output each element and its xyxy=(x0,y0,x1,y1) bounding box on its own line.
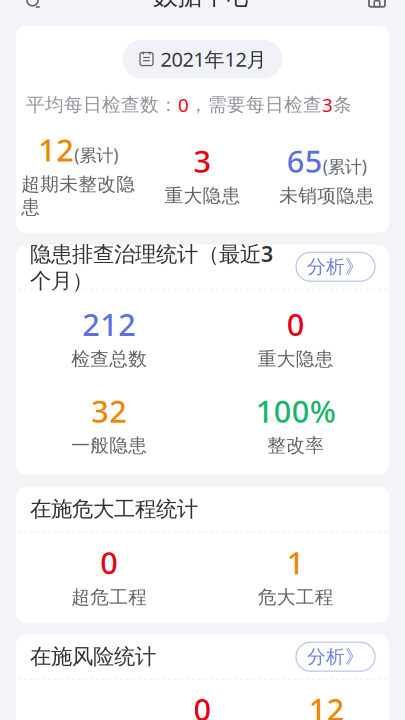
staticText: 条 xyxy=(333,93,352,116)
staticText: 在施风险统计 xyxy=(30,644,156,670)
staticText: 100% xyxy=(256,390,336,431)
staticText: 超期未整改隐患 xyxy=(21,173,135,219)
staticText: 1 xyxy=(287,542,305,583)
staticText: 重大隐患 xyxy=(164,184,240,207)
button[interactable]: Home xyxy=(355,0,399,18)
staticText: 32 xyxy=(91,390,127,431)
staticText: 在施危大工程统计 xyxy=(30,496,198,522)
staticText: 0 xyxy=(178,92,189,117)
staticText: 分析》 xyxy=(307,255,364,278)
staticText: 分析》 xyxy=(307,645,364,668)
staticText: (累计) xyxy=(323,155,367,178)
staticText: 重大隐患 xyxy=(258,347,334,370)
staticText: 65 xyxy=(287,141,323,181)
staticText: 0 xyxy=(100,542,118,583)
staticText: 隐患排查治理统计（最近3个月） xyxy=(30,239,273,294)
staticText: ，需要每日检查 xyxy=(189,93,322,116)
staticText: 超危工程 xyxy=(71,586,147,609)
staticText: 危大工程 xyxy=(258,586,334,609)
staticText: 整改率 xyxy=(267,434,324,457)
staticText: 未销项隐患 xyxy=(279,184,374,207)
staticText: 12 xyxy=(309,689,345,720)
staticText: 2021年12月 xyxy=(160,46,266,72)
staticText: 检查总数 xyxy=(71,347,147,370)
staticText: 一般隐患 xyxy=(71,434,147,457)
staticText: 平均每日检查数： xyxy=(26,93,178,116)
button[interactable]: 2021年12月 xyxy=(122,40,282,78)
staticText: 3 xyxy=(322,92,333,117)
staticText: 12 xyxy=(38,129,74,170)
staticText: 0 xyxy=(287,304,305,344)
staticText: (累计) xyxy=(74,143,118,166)
staticText: 0 xyxy=(193,689,211,720)
staticText: 3 xyxy=(193,141,211,181)
staticText: 数据中心 xyxy=(152,0,252,11)
staticText: 212 xyxy=(82,304,136,344)
button[interactable]: 分析》 xyxy=(296,252,375,281)
button[interactable]: 分析》 xyxy=(296,642,375,671)
button[interactable]: Search and filter xyxy=(6,0,50,18)
